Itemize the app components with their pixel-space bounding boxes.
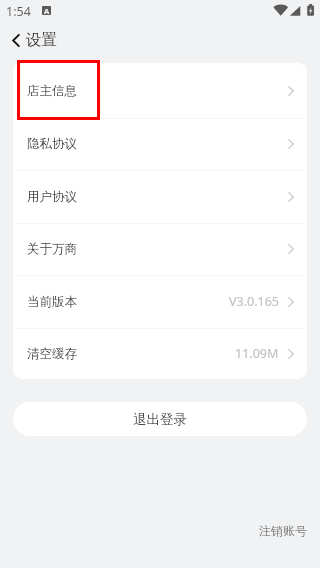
button[interactable]: 当前版本 [13,275,307,328]
button[interactable]: 用户协议 [13,170,307,223]
staticText: 1:54 [6,3,31,20]
button[interactable]: Back [12,30,57,50]
staticText: 设置 [26,30,57,50]
button[interactable]: 关于万商 [13,223,307,275]
staticText: 店主信息 [27,83,77,99]
staticText: 隐私协议 [27,136,77,152]
staticText: 当前版本 [27,294,77,310]
button[interactable]: 注销账号 [259,523,307,538]
staticText: 清空缓存 [27,346,77,362]
staticText: 用户协议 [27,189,77,205]
other: Back [12,34,20,47]
staticText: A [44,6,50,15]
button[interactable]: 清空缓存 [13,328,307,379]
button[interactable]: 退出登录 [13,402,307,436]
staticText: V3.0.165 [229,293,279,310]
staticText: 退出登录 [133,411,187,428]
staticText: 11.09M [235,345,279,362]
button[interactable]: 店主信息 [13,63,307,118]
button[interactable]: 隐私协议 [13,118,307,170]
staticText: 关于万商 [27,241,77,257]
